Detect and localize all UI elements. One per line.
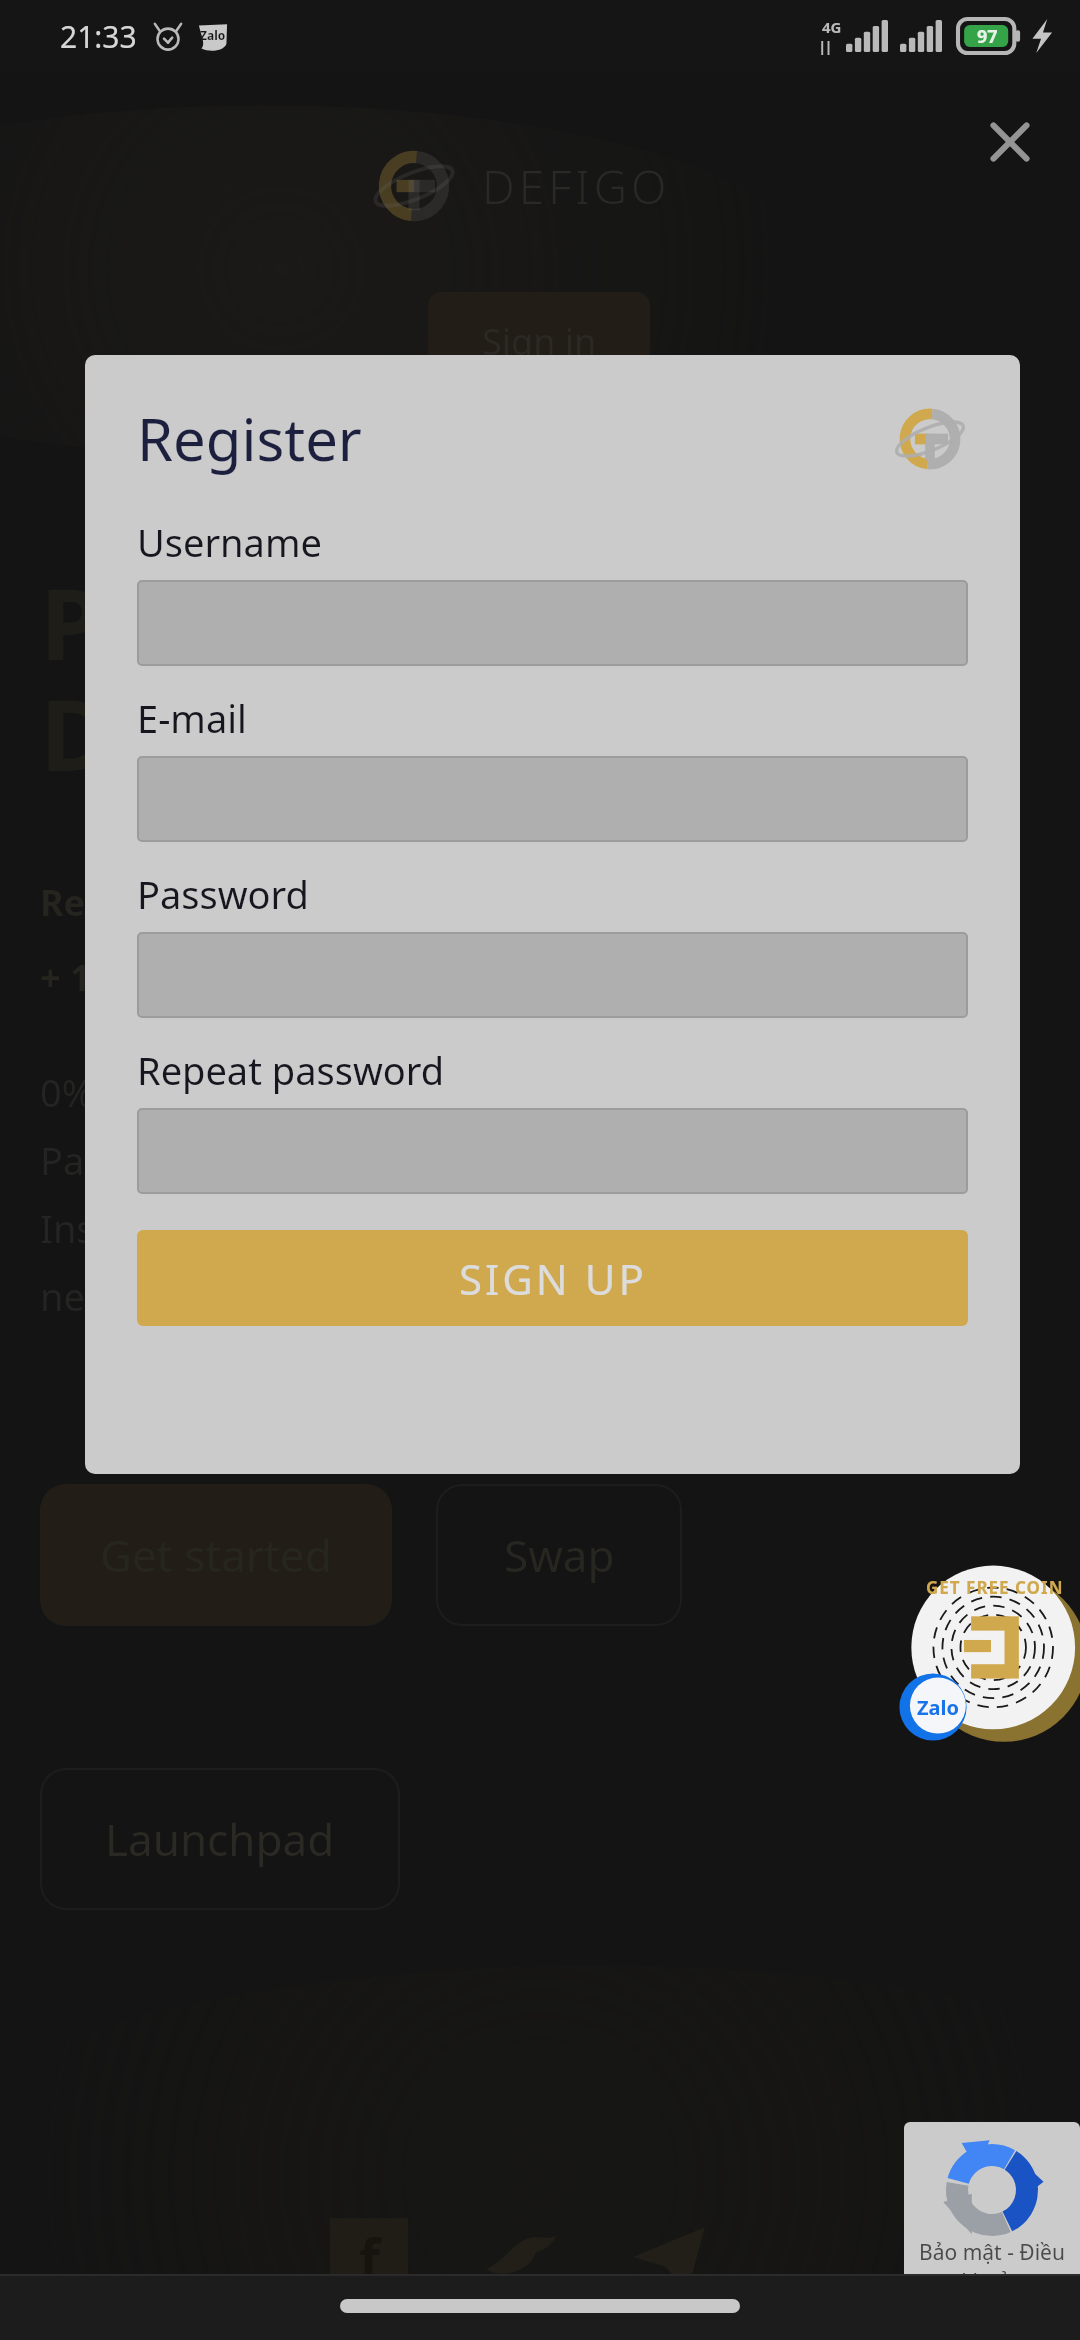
staticText: E-mail (137, 692, 247, 744)
staticText: D (40, 666, 112, 799)
staticText: Repeat password (137, 1044, 445, 1096)
button[interactable]: Close (972, 104, 1048, 180)
staticText: Ins (40, 1202, 95, 1254)
button[interactable]: Telegram (630, 2218, 708, 2296)
button[interactable]: Username (137, 580, 968, 666)
staticText: Password (137, 868, 309, 920)
staticText: Username (137, 516, 322, 568)
button[interactable]: Get free coin (906, 1562, 1080, 1740)
button[interactable]: Password (137, 932, 968, 1018)
staticText: Zalo (917, 1694, 960, 1721)
staticText: + 1 (40, 953, 91, 1002)
staticText: f (359, 2220, 380, 2294)
staticText: Pa (40, 1134, 85, 1186)
button[interactable]: reCAPTCHA privacy and terms (904, 2122, 1080, 2300)
staticText: DEFIGO (482, 155, 671, 218)
button[interactable]: SIGN UP (137, 1230, 968, 1326)
staticText: Launchpad (105, 1809, 335, 1869)
staticText: Swap (504, 1525, 615, 1585)
button[interactable]: Launchpad (40, 1768, 400, 1910)
staticText: 97 (977, 24, 998, 49)
staticText: 0% (40, 1066, 94, 1118)
staticText: 21:33 (60, 16, 137, 57)
button[interactable]: Twitter (480, 2218, 558, 2296)
staticText: SIGN UP (459, 1250, 647, 1307)
staticText: khoản (961, 2267, 1023, 2296)
staticText: Bảo mật - Điều (919, 2238, 1065, 2267)
button[interactable]: E-mail (137, 756, 968, 842)
staticText: Register (137, 399, 892, 478)
button[interactable]: Swap (436, 1484, 682, 1626)
button[interactable]: Repeat password (137, 1108, 968, 1194)
button[interactable]: Facebook (330, 2218, 408, 2296)
staticText: Zalo (200, 27, 226, 43)
staticText: P (40, 555, 101, 688)
staticText: ne (40, 1270, 85, 1322)
staticText: Re (40, 878, 86, 927)
button[interactable]: Sign in (428, 292, 650, 390)
staticText: GET FREE COIN (926, 1576, 1064, 1599)
staticText: Sign in (482, 317, 597, 366)
staticText: 4G (822, 17, 842, 37)
